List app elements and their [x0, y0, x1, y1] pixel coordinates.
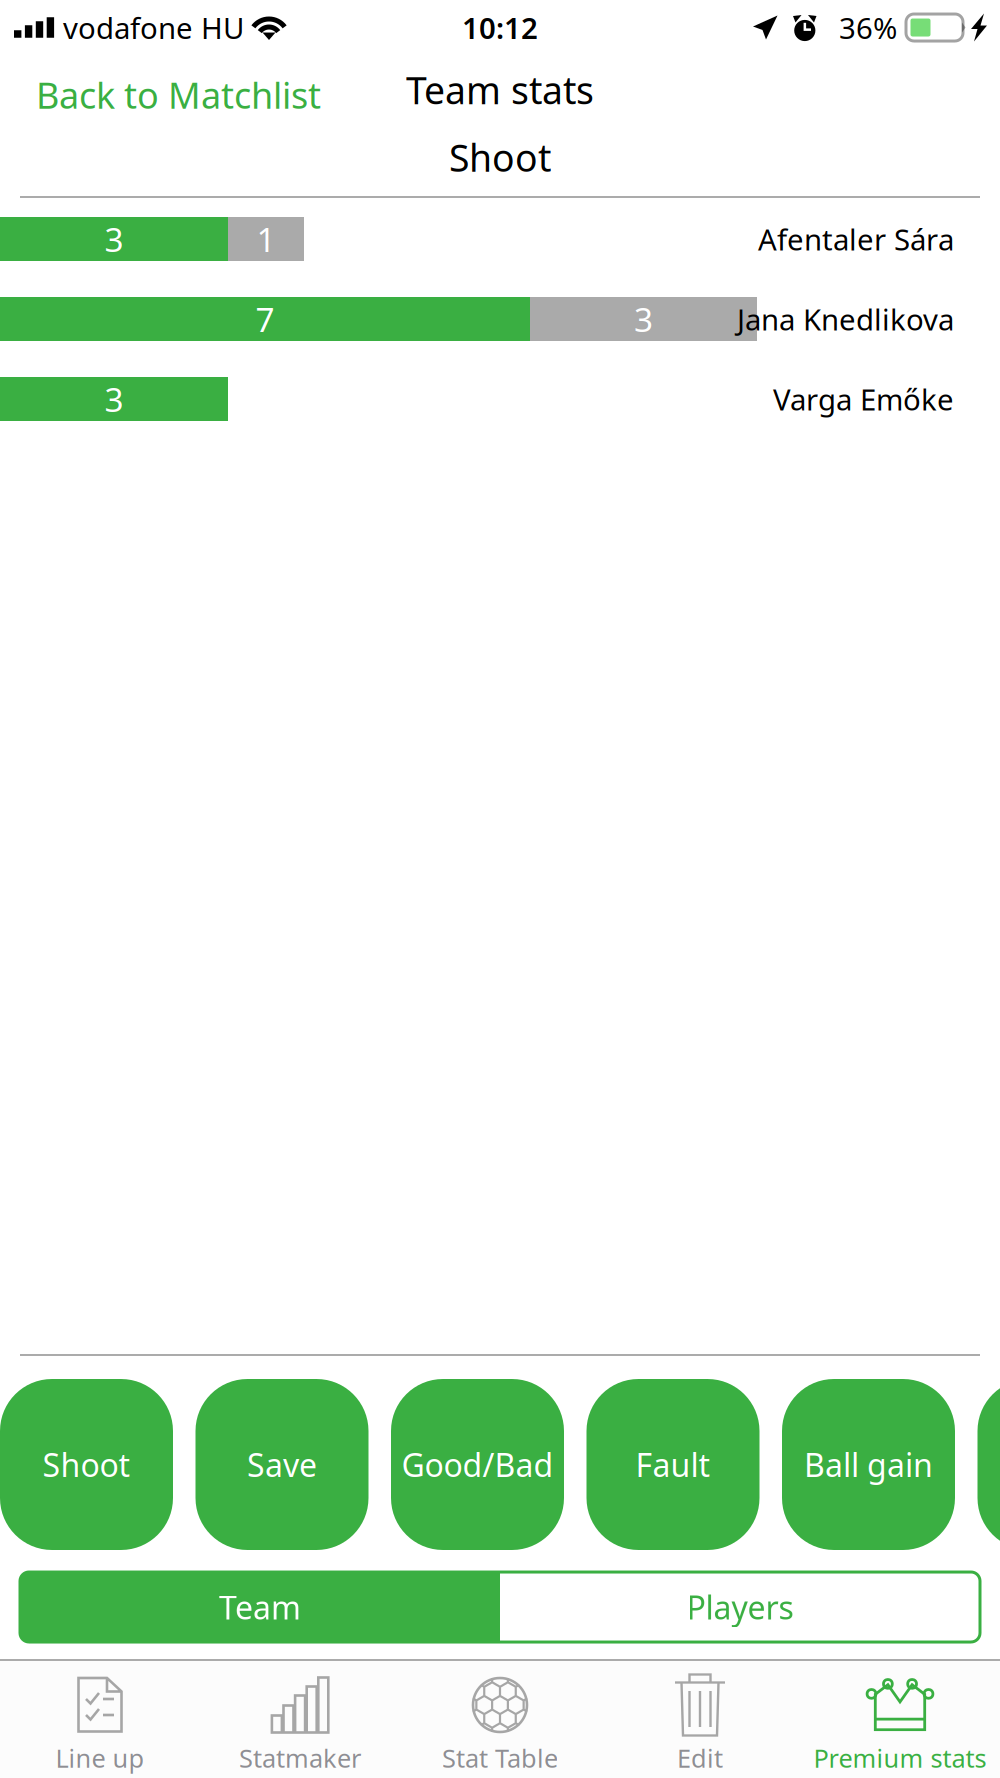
button[interactable]: Team — [20, 1572, 500, 1642]
staticText: Varga Emőke — [773, 379, 954, 418]
button[interactable]: Players — [500, 1572, 980, 1642]
staticText: Afentaler Sára — [758, 219, 954, 258]
staticText: 3 — [104, 217, 123, 261]
staticText: Jana Knedlikova — [737, 299, 954, 338]
button[interactable]: Good/Bad — [391, 1379, 564, 1550]
button[interactable]: Edit — [600, 1661, 800, 1778]
staticText: 10:12 — [462, 8, 538, 47]
staticText: Premium stats — [813, 1741, 986, 1775]
button[interactable]: Save — [195, 1379, 368, 1550]
staticText: Line up — [55, 1741, 144, 1775]
staticText: 36% — [839, 8, 897, 47]
staticText: Ball gain — [804, 1443, 933, 1486]
staticText: Shoot — [42, 1443, 130, 1486]
button[interactable]: Stat Table — [400, 1661, 600, 1778]
staticText: Team stats — [406, 65, 594, 114]
button[interactable]: Back to Matchlist — [0, 65, 345, 131]
button[interactable]: Statmaker — [200, 1661, 400, 1778]
staticText: Edit — [677, 1741, 723, 1775]
staticText: Stat Table — [442, 1741, 558, 1775]
button[interactable]: Tech — [977, 1379, 1000, 1550]
staticText: Save — [247, 1443, 317, 1486]
staticText: vodafone HU — [63, 8, 244, 47]
staticText: 3 — [634, 297, 653, 341]
staticText: Back to Matchlist — [36, 71, 321, 119]
staticText: Team — [219, 1586, 301, 1628]
button[interactable]: Premium stats — [800, 1661, 1000, 1778]
button[interactable]: Shoot — [0, 1379, 173, 1550]
staticText: Players — [686, 1586, 793, 1628]
button[interactable]: Ball gain — [782, 1379, 955, 1550]
staticText: 1 — [256, 217, 275, 261]
staticText: 7 — [255, 297, 274, 341]
staticText: Shoot — [449, 132, 551, 182]
staticText: Good/Bad — [401, 1443, 553, 1486]
staticText: 3 — [104, 377, 123, 421]
button[interactable]: Fault — [586, 1379, 759, 1550]
staticText: Statmaker — [239, 1741, 361, 1775]
button[interactable]: Line up — [0, 1661, 200, 1778]
staticText: Fault — [635, 1443, 710, 1486]
